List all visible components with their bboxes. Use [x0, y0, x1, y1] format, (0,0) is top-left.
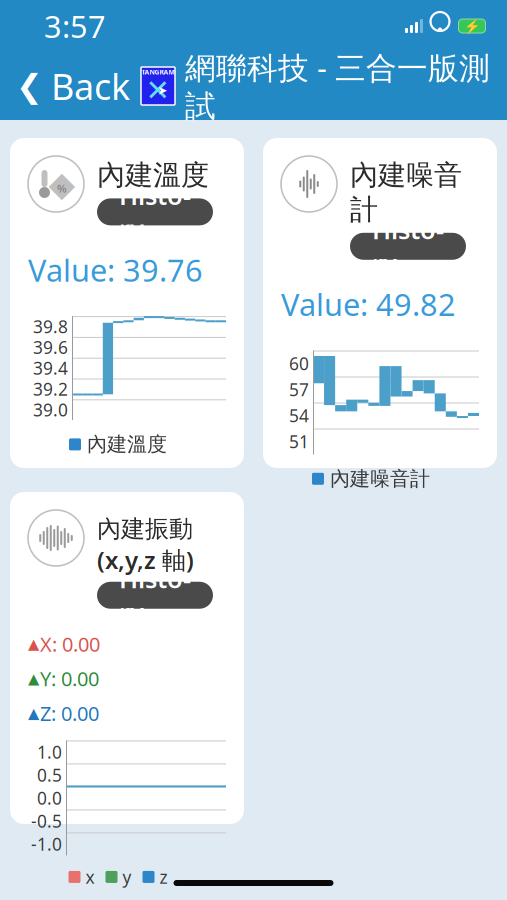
staticText: TANGRAM — [141, 68, 174, 76]
staticText: z — [159, 865, 167, 888]
staticText: x — [85, 865, 94, 888]
staticText: 39.6 — [33, 336, 68, 359]
staticText: 51 — [289, 430, 309, 453]
staticText: y — [122, 865, 131, 888]
staticText: Value: 49.82 — [281, 284, 456, 324]
button[interactable]: History — [97, 198, 213, 225]
button[interactable]: History — [350, 233, 466, 260]
staticText: 3:57 — [44, 6, 106, 46]
staticText: ▲ — [28, 670, 39, 687]
staticText: 內建溫度 — [97, 158, 209, 192]
staticText: ❮ — [16, 68, 43, 104]
staticText: History — [119, 562, 191, 629]
staticText: 內建振動 (x,y,z 軸) — [97, 512, 194, 576]
staticText: -0.5 — [31, 809, 62, 832]
staticText: Z: 0.00 — [40, 700, 99, 726]
staticText: Back — [51, 62, 130, 110]
staticText: 0.0 — [37, 786, 62, 809]
staticText: 0.5 — [37, 763, 62, 786]
staticText: 內建噪音計 — [330, 466, 430, 491]
staticText: Y: 0.00 — [40, 665, 99, 692]
staticText: ➤ — [157, 84, 167, 97]
staticText: 39.0 — [33, 398, 68, 421]
staticText: 39.4 — [33, 357, 68, 380]
staticText: X: 0.00 — [40, 631, 100, 657]
staticText: 57 — [289, 378, 309, 401]
staticText: 60 — [289, 352, 309, 375]
staticText: 54 — [289, 404, 309, 427]
staticText: -1.0 — [31, 832, 62, 855]
staticText: 網聯科技 - 三合一版測試 — [185, 47, 490, 125]
staticText: 內建噪音計 — [350, 158, 462, 227]
staticText: History — [372, 213, 444, 280]
button[interactable]: ❮ — [0, 62, 138, 110]
staticText: History — [119, 178, 191, 245]
staticText: 39.2 — [33, 377, 68, 400]
staticText: 內建溫度 — [87, 432, 167, 457]
staticText: 1.0 — [37, 740, 62, 763]
staticText: 39.8 — [33, 315, 68, 338]
staticText: ▲ — [28, 705, 39, 721]
staticText: ✕ — [145, 74, 170, 107]
staticText: ▲ — [28, 636, 39, 652]
staticText: ⚡ — [463, 18, 480, 34]
staticText: % — [57, 181, 67, 196]
staticText: Value: 39.76 — [28, 249, 203, 290]
button[interactable]: History — [97, 582, 213, 609]
staticText: ◆ — [48, 164, 75, 204]
